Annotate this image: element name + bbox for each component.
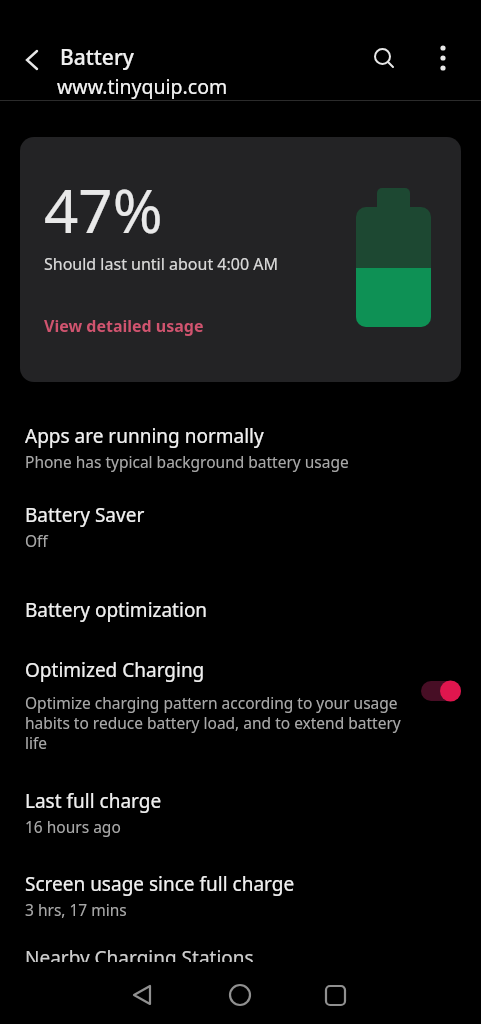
staticText: Should last until about 4:00 AM bbox=[44, 253, 279, 275]
staticText: Battery Saver bbox=[25, 502, 145, 528]
staticText: www.tinyquip.com bbox=[57, 73, 228, 100]
button[interactable] bbox=[14, 42, 50, 78]
button[interactable]: 47% bbox=[20, 137, 461, 382]
button[interactable] bbox=[366, 40, 402, 76]
staticText: Last full charge bbox=[25, 788, 162, 814]
button[interactable] bbox=[317, 977, 353, 1013]
staticText: Nearby Charging Stations bbox=[25, 945, 254, 964]
button[interactable]: Optimized Charging bbox=[0, 649, 481, 753]
staticText: Apps are running normally bbox=[25, 423, 264, 449]
staticText: Optimize charging pattern according to y… bbox=[25, 692, 401, 753]
button[interactable] bbox=[222, 977, 258, 1013]
staticText: 47% bbox=[44, 169, 163, 251]
button[interactable]: Screen usage since full charge bbox=[0, 863, 481, 928]
staticText: Off bbox=[25, 530, 48, 551]
staticText: 16 hours ago bbox=[25, 816, 121, 837]
button[interactable] bbox=[421, 681, 461, 701]
staticText: View detailed usage bbox=[44, 315, 204, 337]
button[interactable]: Apps are running normally bbox=[0, 415, 481, 480]
staticText: Battery optimization bbox=[25, 597, 208, 623]
button[interactable] bbox=[425, 40, 461, 76]
button[interactable]: Battery Saver bbox=[0, 494, 481, 559]
button[interactable] bbox=[124, 977, 160, 1013]
staticText: Screen usage since full charge bbox=[25, 871, 295, 897]
staticText: Battery bbox=[60, 43, 134, 72]
staticText: 3 hrs, 17 mins bbox=[25, 899, 127, 920]
staticText: Phone has typical background battery usa… bbox=[25, 451, 349, 472]
button[interactable]: Last full charge bbox=[0, 780, 481, 845]
button[interactable]: Battery optimization bbox=[0, 589, 481, 631]
staticText: Optimized Charging bbox=[25, 657, 205, 683]
